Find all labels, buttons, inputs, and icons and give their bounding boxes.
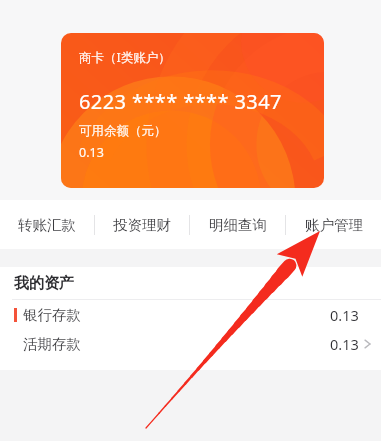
staticText: 账户管理	[305, 216, 363, 234]
button[interactable]: 投资理财	[95, 200, 189, 249]
button[interactable]: 账户管理	[286, 200, 381, 249]
button[interactable]: 商卡（I类账户）	[61, 33, 324, 188]
button[interactable]: 转账汇款	[0, 200, 94, 249]
staticText: 转账汇款	[18, 216, 76, 234]
staticText: 0.13	[330, 334, 359, 354]
staticText: 活期存款	[23, 335, 81, 353]
staticText: 可用余额（元）	[79, 123, 167, 139]
staticText: 我的资产	[14, 274, 74, 293]
staticText: 6223 **** **** 3347	[79, 88, 282, 115]
staticText: 投资理财	[113, 216, 171, 234]
staticText: 明细查询	[209, 216, 267, 234]
staticText: 银行存款	[23, 306, 81, 324]
staticText: 0.13	[330, 305, 359, 325]
staticText: 0.13	[79, 144, 104, 161]
button[interactable]: 活期存款	[0, 329, 381, 358]
button[interactable]: 明细查询	[190, 200, 285, 249]
staticText: 商卡（I类账户）	[79, 49, 171, 66]
button[interactable]: 银行存款	[0, 300, 381, 329]
